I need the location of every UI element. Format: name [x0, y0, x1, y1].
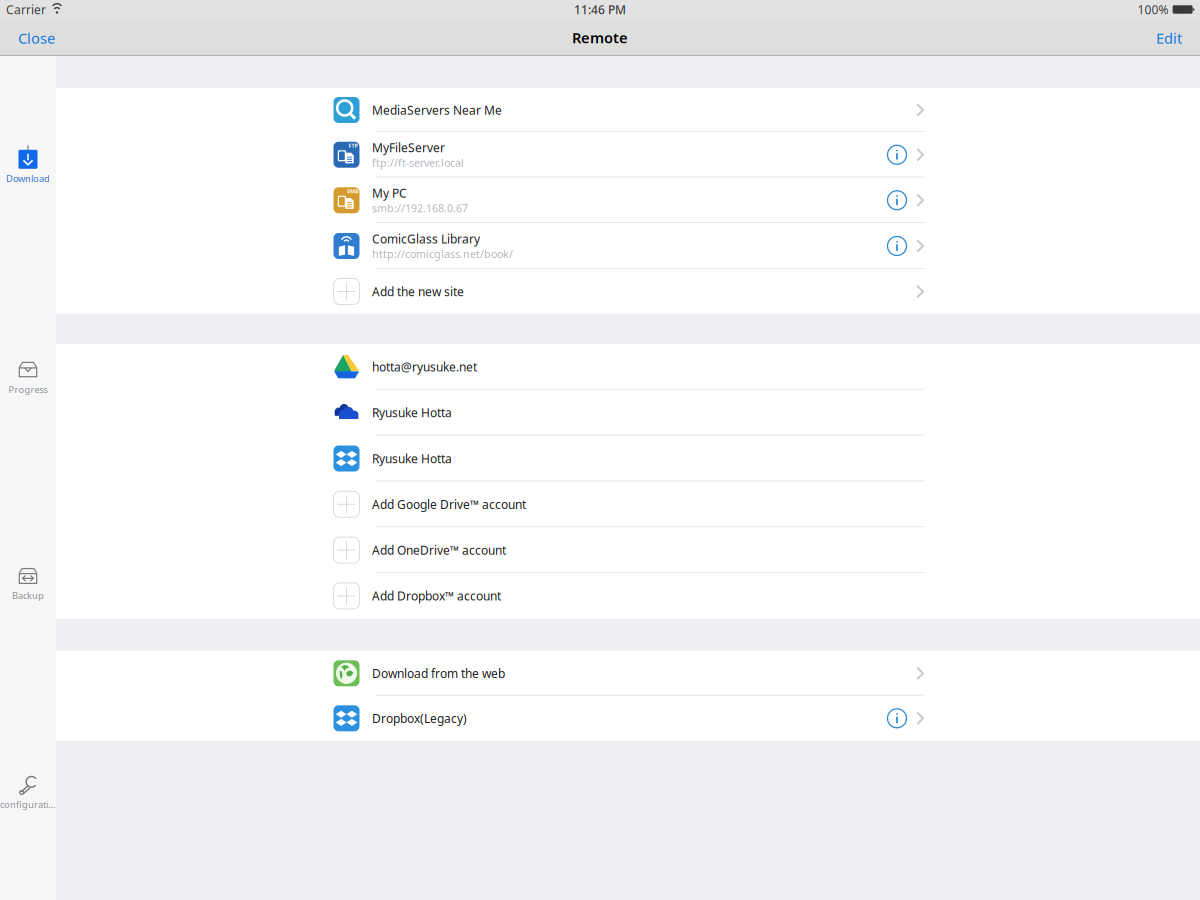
button[interactable]: More information: [885, 143, 909, 167]
button[interactable]: Backup: [0, 565, 56, 601]
staticText: Close: [18, 28, 55, 48]
button[interactable]: SMB: [331, 177, 925, 223]
staticText: MediaServers Near Me: [372, 102, 502, 118]
staticText: Download: [6, 172, 50, 185]
button[interactable]: More information: [885, 234, 909, 258]
staticText: Backup: [12, 589, 44, 602]
button[interactable]: Download from the web: [331, 651, 925, 696]
staticText: ComicGlass Library: [372, 231, 480, 247]
button[interactable]: configurati...: [0, 774, 56, 810]
button[interactable]: More information: [885, 706, 909, 730]
staticText: MyFileServer: [372, 140, 445, 156]
button[interactable]: Ryusuke Hotta: [331, 390, 925, 436]
button[interactable]: Add OneDrive™ account: [331, 527, 925, 573]
staticText: Edit: [1156, 28, 1182, 48]
staticText: SMB: [347, 188, 359, 195]
staticText: 11:46 PM: [574, 1, 626, 17]
button[interactable]: Add Dropbox™ account: [331, 573, 925, 619]
button[interactable]: Add Google Drive™ account: [331, 481, 925, 527]
staticText: Add Google Drive™ account: [372, 496, 526, 512]
staticText: Dropbox(Legacy): [372, 710, 467, 726]
staticText: Ryusuke Hotta: [372, 405, 452, 421]
staticText: ftp://ft-server.local: [372, 156, 464, 170]
staticText: Download from the web: [372, 665, 505, 681]
button[interactable]: FTP: [331, 132, 925, 177]
staticText: hotta@ryusuke.net: [372, 359, 477, 375]
staticText: My PC: [372, 185, 407, 201]
staticText: 100%: [1138, 1, 1169, 17]
staticText: smb://192.168.0.67: [372, 201, 468, 215]
staticText: Add the new site: [372, 283, 464, 299]
staticText: configurati...: [0, 798, 56, 811]
button[interactable]: Edit: [1144, 20, 1200, 56]
staticText: Add Dropbox™ account: [372, 588, 501, 604]
button[interactable]: More information: [885, 188, 909, 212]
staticText: Add OneDrive™ account: [372, 542, 506, 558]
button[interactable]: Progress: [0, 359, 56, 395]
button[interactable]: Ryusuke Hotta: [331, 436, 925, 481]
staticText: Carrier: [6, 1, 46, 17]
button[interactable]: hotta@ryusuke.net: [331, 344, 925, 390]
staticText: FTP: [349, 142, 358, 149]
staticText: Ryusuke Hotta: [372, 450, 452, 466]
button[interactable]: Dropbox(Legacy): [331, 696, 925, 741]
button[interactable]: Download: [0, 148, 56, 184]
button[interactable]: ComicGlass Library: [331, 223, 925, 269]
staticText: Progress: [8, 383, 47, 396]
staticText: Remote: [572, 28, 628, 47]
button[interactable]: Add the new site: [331, 269, 925, 314]
staticText: http://comicglass.net/book/: [372, 247, 513, 261]
button[interactable]: MediaServers Near Me: [331, 88, 925, 132]
button[interactable]: Close: [0, 20, 67, 56]
